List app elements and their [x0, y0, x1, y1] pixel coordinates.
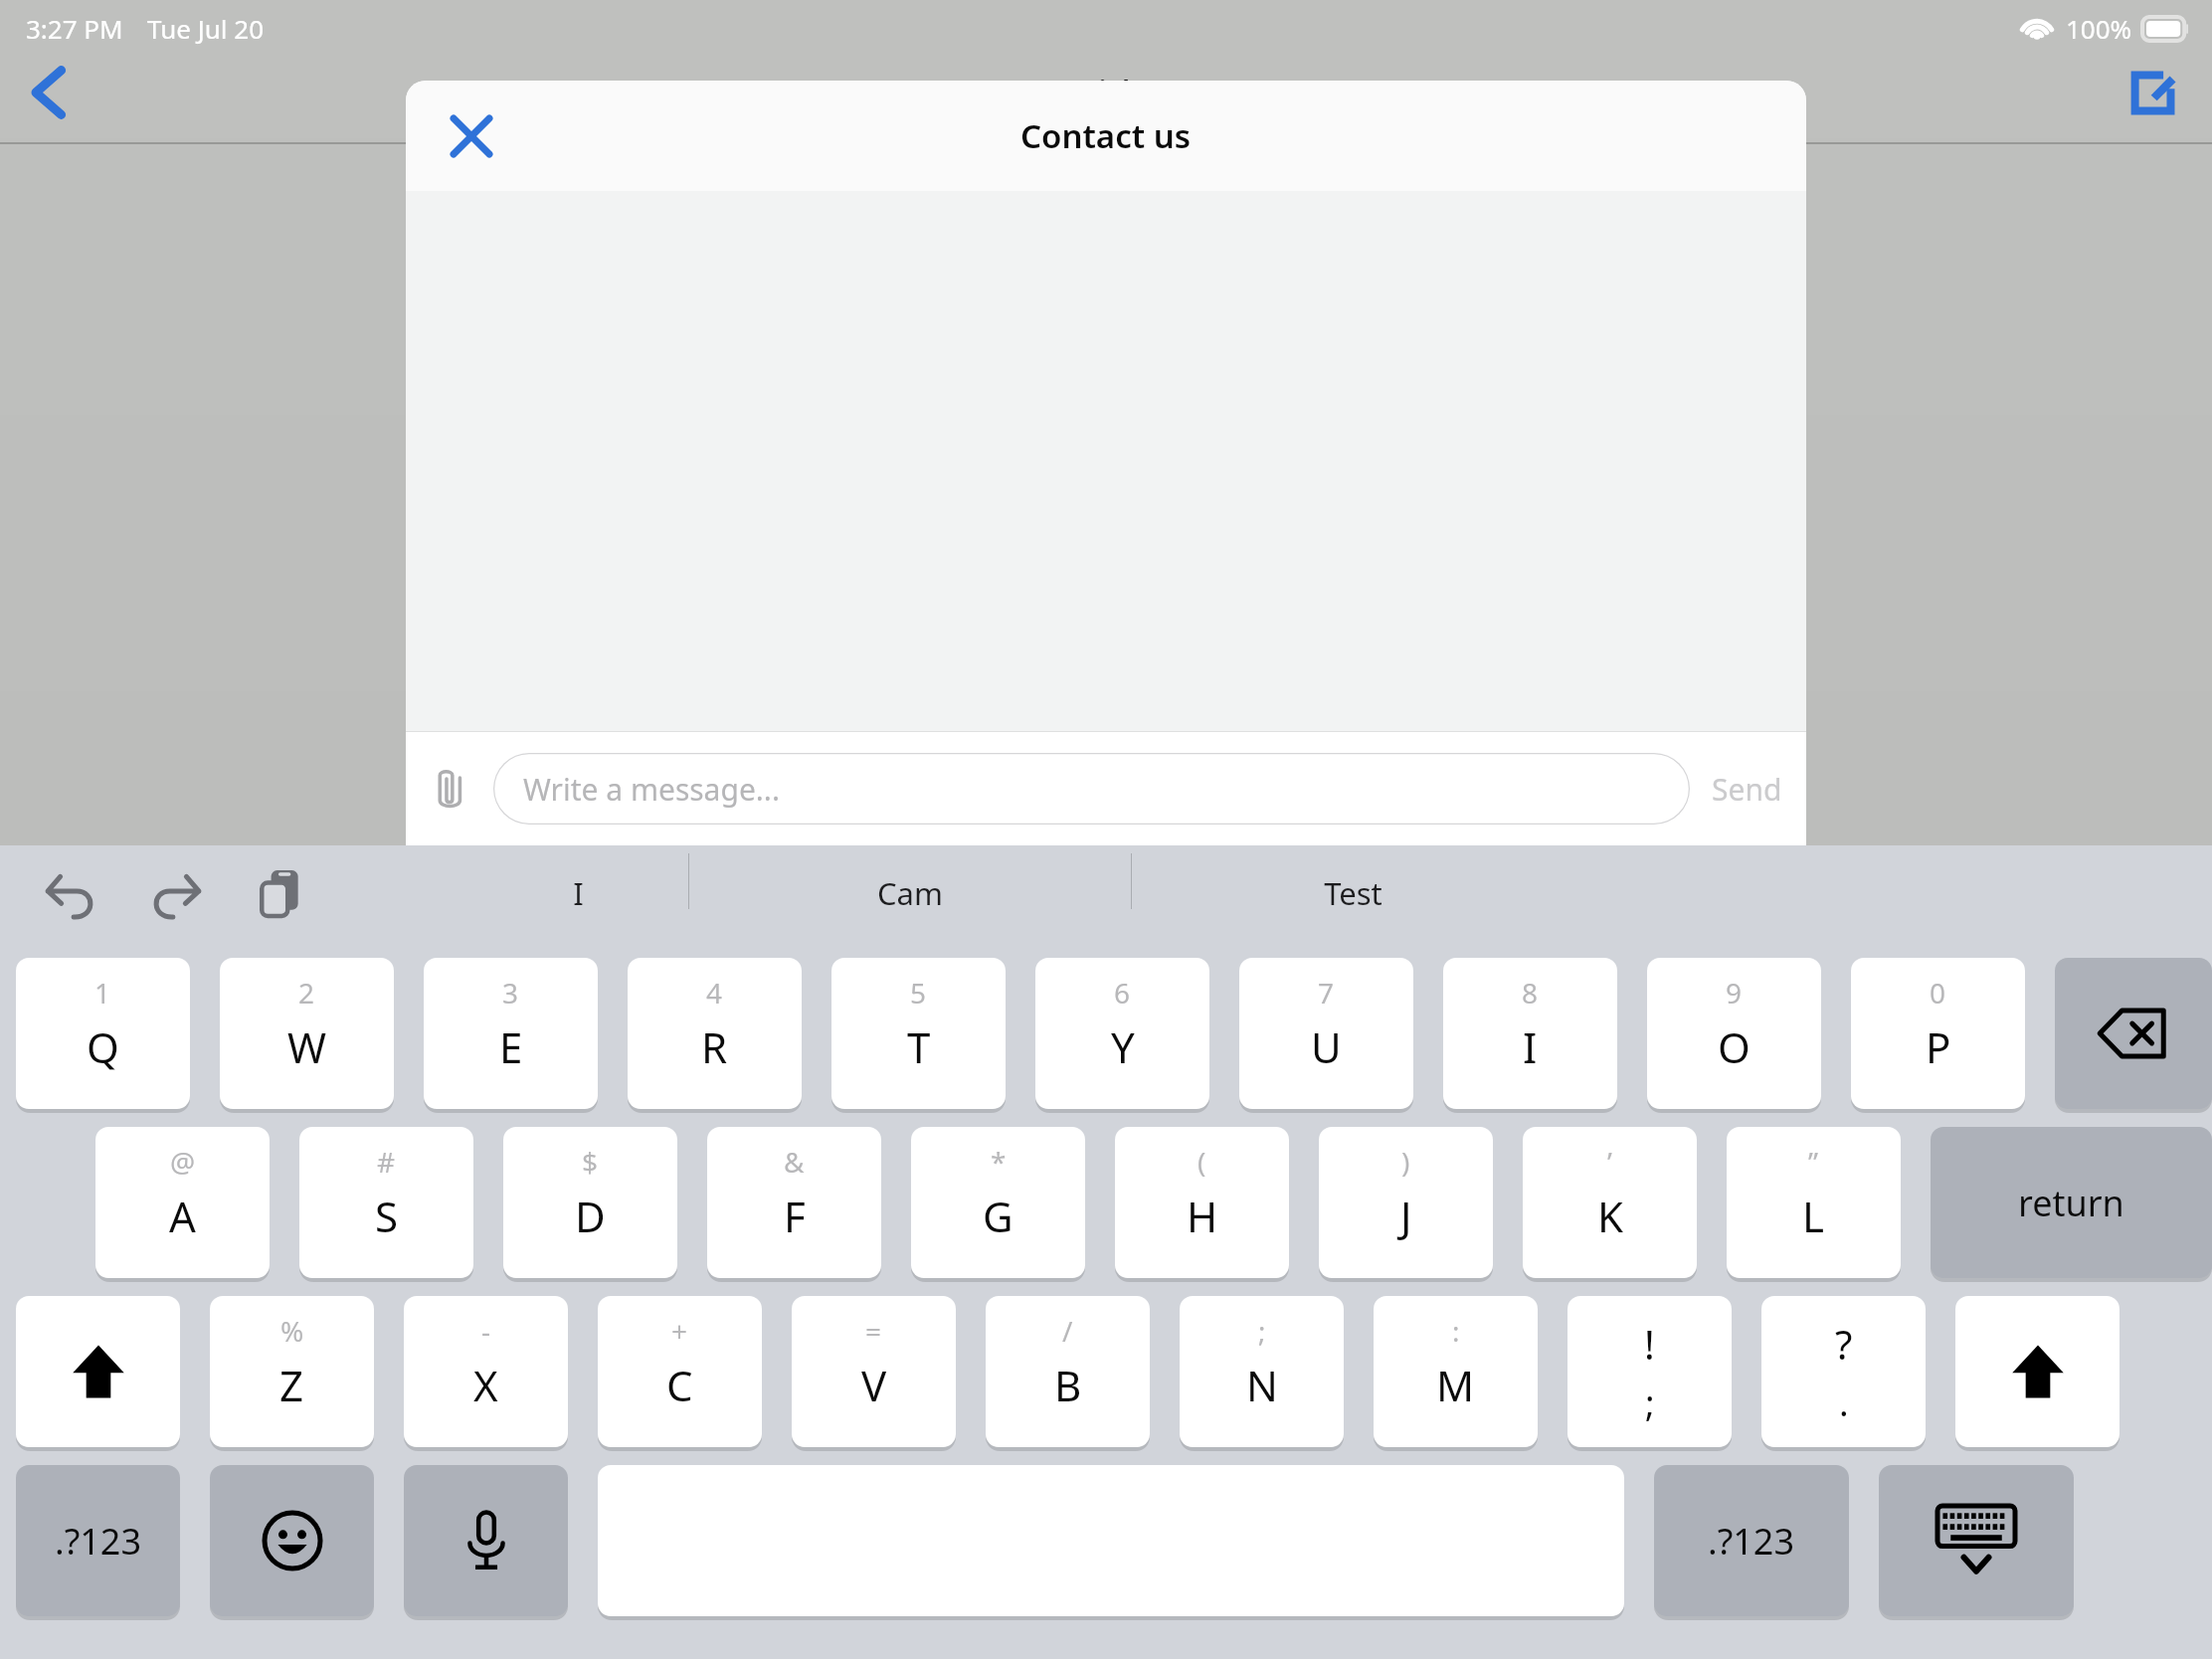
staticText: P	[1926, 1018, 1951, 1075]
staticText: 3:27 PM	[26, 11, 123, 46]
staticText: $	[582, 1143, 599, 1181]
button[interactable]: *	[911, 1127, 1085, 1278]
staticText: ”	[1808, 1143, 1819, 1181]
staticText: *	[991, 1143, 1007, 1181]
button[interactable]: Emoji	[210, 1465, 374, 1616]
button[interactable]: @	[95, 1127, 270, 1278]
staticText: 100%	[2066, 11, 2132, 46]
staticText: ;	[1645, 1379, 1655, 1427]
staticText: K	[1597, 1188, 1623, 1244]
button[interactable]: Redo	[145, 862, 207, 924]
button[interactable]: ;	[1180, 1296, 1344, 1447]
staticText: My Tickets	[1029, 71, 1184, 111]
staticText: E	[499, 1018, 523, 1075]
button[interactable]: Space	[598, 1465, 1624, 1616]
button[interactable]: Shift	[1955, 1296, 2120, 1447]
button[interactable]: .?123	[1654, 1465, 1849, 1616]
button[interactable]: ’	[1523, 1127, 1697, 1278]
staticText: Cam	[877, 872, 943, 914]
staticText: Send	[1712, 769, 1782, 810]
button[interactable]: $	[503, 1127, 677, 1278]
button[interactable]: )	[1319, 1127, 1493, 1278]
button[interactable]: 6	[1035, 958, 1209, 1109]
staticText: S	[375, 1188, 399, 1244]
staticText: ;	[1258, 1312, 1266, 1350]
button[interactable]: .?123	[16, 1465, 180, 1616]
staticText: &	[784, 1143, 805, 1181]
staticText: (	[1198, 1143, 1206, 1181]
button[interactable]: Undo	[40, 862, 101, 924]
staticText: /	[1062, 1312, 1073, 1350]
staticText: R	[701, 1018, 728, 1075]
staticText: Tue Jul 20	[147, 11, 265, 46]
button[interactable]: Send	[1706, 761, 1788, 818]
staticText: return	[2018, 1179, 2124, 1227]
button[interactable]: Back	[12, 53, 92, 132]
button[interactable]: 7	[1239, 958, 1413, 1109]
button[interactable]: =	[792, 1296, 956, 1447]
button[interactable]: 3	[424, 958, 598, 1109]
staticText: W	[287, 1018, 327, 1075]
staticText: Z	[279, 1357, 304, 1413]
button[interactable]: ?	[1761, 1296, 1926, 1447]
button[interactable]: Hide keyboard	[1879, 1465, 2074, 1616]
button[interactable]: +	[598, 1296, 762, 1447]
button[interactable]: %	[210, 1296, 374, 1447]
staticText: Q	[87, 1018, 119, 1075]
staticText: %	[280, 1312, 304, 1350]
staticText: 4	[706, 974, 723, 1012]
button[interactable]: :	[1374, 1296, 1538, 1447]
staticText: B	[1054, 1357, 1082, 1413]
button[interactable]: (	[1115, 1127, 1289, 1278]
staticText: =	[865, 1312, 882, 1350]
staticText: 9	[1726, 974, 1743, 1012]
staticText: T	[907, 1018, 931, 1075]
staticText: D	[575, 1188, 606, 1244]
staticText: !	[1644, 1317, 1655, 1371]
staticText: M	[1436, 1357, 1475, 1413]
button[interactable]: Cam	[689, 853, 1131, 933]
button[interactable]: Attach file	[424, 761, 479, 817]
button[interactable]: Paste	[251, 862, 312, 924]
button[interactable]: /	[986, 1296, 1150, 1447]
button[interactable]: Backspace	[2055, 958, 2212, 1109]
button[interactable]: -	[404, 1296, 568, 1447]
button[interactable]: Dictation	[404, 1465, 568, 1616]
button[interactable]: 4	[628, 958, 802, 1109]
staticText: O	[1718, 1018, 1751, 1075]
button[interactable]: !	[1567, 1296, 1732, 1447]
staticText: Y	[1111, 1018, 1135, 1075]
staticText: F	[784, 1188, 806, 1244]
button[interactable]: &	[707, 1127, 881, 1278]
staticText: .?123	[1708, 1517, 1795, 1566]
button[interactable]: 8	[1443, 958, 1617, 1109]
button[interactable]: Compose	[2119, 58, 2188, 127]
button[interactable]: 9	[1647, 958, 1821, 1109]
staticText: 6	[1114, 974, 1131, 1012]
staticText: 2	[298, 974, 315, 1012]
staticText: X	[473, 1357, 498, 1413]
staticText: .?123	[55, 1517, 142, 1566]
staticText: Test	[1324, 872, 1382, 914]
staticText: 1	[94, 974, 111, 1012]
button[interactable]: Shift	[16, 1296, 180, 1447]
button[interactable]: 1	[16, 958, 190, 1109]
button[interactable]: Write a message...	[493, 753, 1690, 825]
button[interactable]: return	[1931, 1127, 2212, 1278]
button[interactable]: 5	[831, 958, 1006, 1109]
button[interactable]: ”	[1727, 1127, 1901, 1278]
staticText: 8	[1522, 974, 1539, 1012]
staticText: :	[1452, 1312, 1460, 1350]
staticText: 0	[1930, 974, 1946, 1012]
staticText: N	[1246, 1357, 1278, 1413]
button[interactable]: #	[299, 1127, 473, 1278]
button[interactable]: 2	[220, 958, 394, 1109]
staticText: J	[1400, 1188, 1412, 1244]
staticText: ?	[1835, 1317, 1853, 1371]
staticText: #	[377, 1143, 396, 1181]
staticText: +	[671, 1312, 688, 1350]
button[interactable]: Test	[1132, 853, 1573, 933]
button[interactable]: I	[467, 853, 688, 933]
button[interactable]: Close	[436, 100, 507, 172]
button[interactable]: 0	[1851, 958, 2025, 1109]
